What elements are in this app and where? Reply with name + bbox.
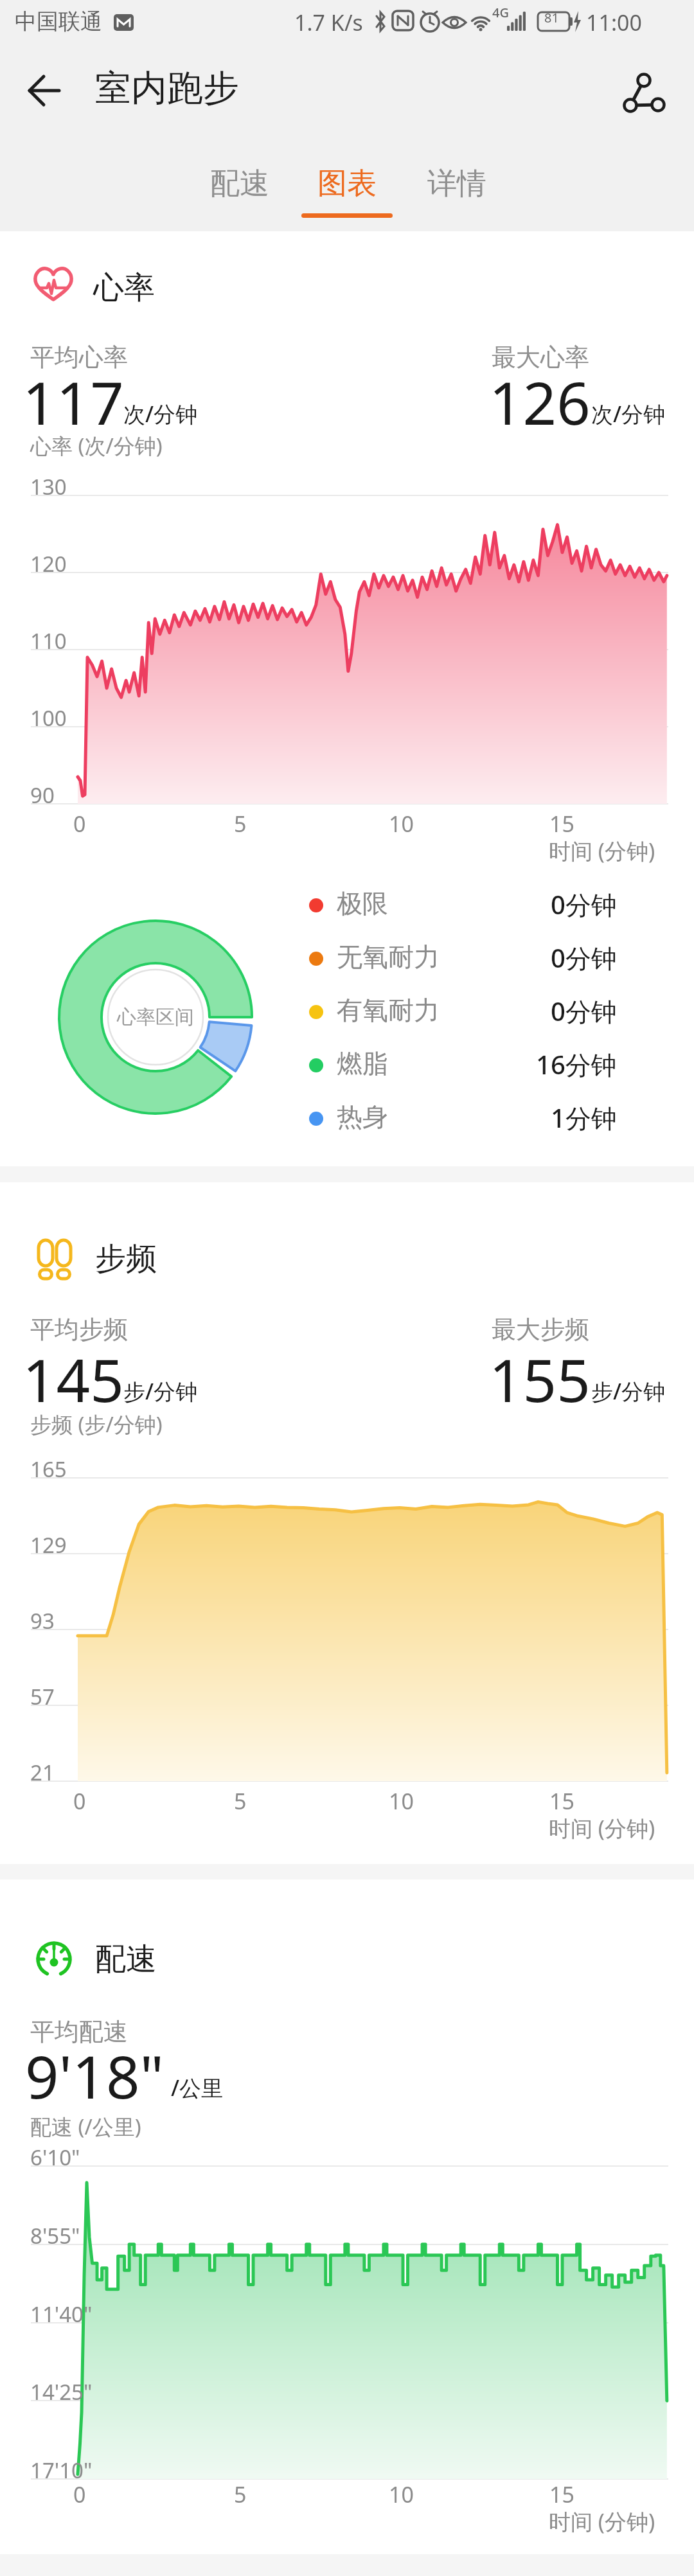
staticText: 燃脂	[337, 1047, 388, 1079]
staticText: 155	[489, 1339, 591, 1419]
staticText: 步/分钟	[123, 1376, 198, 1406]
staticText: 17'10"	[30, 2456, 93, 2485]
staticText: 10	[389, 2480, 414, 2509]
button[interactable]	[612, 55, 676, 119]
staticText: 6'10"	[30, 2143, 80, 2172]
staticText: 14'25"	[30, 2377, 93, 2406]
staticText: 5	[234, 809, 247, 839]
staticText: 57	[30, 1682, 55, 1711]
button[interactable]: 图表	[292, 157, 402, 225]
staticText: 时间 (分钟)	[549, 2507, 655, 2536]
staticText: 热身	[337, 1101, 388, 1133]
staticText: 0分钟	[551, 940, 617, 975]
staticText: 15	[549, 1786, 574, 1816]
staticText: 配速	[95, 1940, 157, 1978]
staticText: 0	[73, 2480, 86, 2509]
staticText: 步频	[95, 1239, 157, 1278]
staticText: 次/分钟	[591, 399, 666, 429]
staticText: 心率区间	[117, 1005, 194, 1029]
staticText: 120	[30, 549, 67, 578]
staticText: 配速 (/公里)	[30, 2112, 141, 2141]
staticText: 时间 (分钟)	[549, 836, 655, 866]
staticText: 极限	[337, 887, 388, 919]
staticText: 0	[73, 809, 86, 839]
staticText: 步/分钟	[591, 1376, 666, 1406]
staticText: 心率 (次/分钟)	[30, 431, 163, 460]
staticText: 0分钟	[551, 887, 617, 922]
staticText: 100	[30, 704, 67, 733]
staticText: 4G	[492, 4, 509, 21]
staticText: 详情	[427, 165, 486, 202]
staticText: 配速	[210, 165, 269, 202]
staticText: 9'18"	[25, 2036, 165, 2116]
staticText: 0分钟	[551, 993, 617, 1029]
staticText: 110	[30, 626, 67, 655]
staticText: 145	[22, 1339, 124, 1419]
button[interactable]	[18, 62, 72, 116]
staticText: 15	[549, 809, 574, 839]
staticText: 130	[30, 472, 67, 501]
staticText: 165	[30, 1455, 67, 1484]
staticText: 15	[549, 2480, 574, 2509]
staticText: 时间 (分钟)	[549, 1813, 655, 1843]
staticText: 1.7 K/s	[294, 8, 363, 37]
staticText: 次/分钟	[123, 399, 198, 429]
staticText: 有氧耐力	[337, 994, 440, 1026]
staticText: 最大心率	[492, 342, 589, 373]
staticText: 5	[234, 2480, 247, 2509]
staticText: 8'55"	[30, 2221, 80, 2250]
staticText: /公里	[171, 2073, 224, 2102]
staticText: 最大步频	[492, 1314, 589, 1345]
staticText: 10	[389, 1786, 414, 1816]
staticText: 93	[30, 1606, 55, 1635]
staticText: 步频 (步/分钟)	[30, 1410, 163, 1439]
staticText: 图表	[317, 165, 377, 202]
staticText: 11:00	[586, 8, 642, 37]
staticText: 无氧耐力	[337, 941, 440, 973]
staticText: 81	[544, 9, 559, 26]
staticText: 10	[389, 809, 414, 839]
button[interactable]: 配速	[185, 157, 294, 225]
staticText: 117	[22, 362, 124, 442]
staticText: 21	[30, 1758, 55, 1787]
staticText: 室内跑步	[95, 66, 239, 111]
button[interactable]: 详情	[402, 157, 512, 225]
staticText: 1分钟	[551, 1100, 617, 1135]
staticText: 11'40"	[30, 2300, 93, 2329]
staticText: 5	[234, 1786, 247, 1816]
staticText: 中国联通	[15, 8, 102, 35]
staticText: 平均步频	[30, 1314, 128, 1345]
staticText: 129	[30, 1531, 67, 1559]
staticText: 平均配速	[30, 2016, 128, 2047]
staticText: 0	[73, 1786, 86, 1816]
staticText: 126	[489, 362, 591, 442]
staticText: 16分钟	[536, 1047, 617, 1082]
staticText: 平均心率	[30, 342, 128, 373]
staticText: 90	[30, 781, 55, 810]
staticText: 心率	[93, 269, 155, 307]
